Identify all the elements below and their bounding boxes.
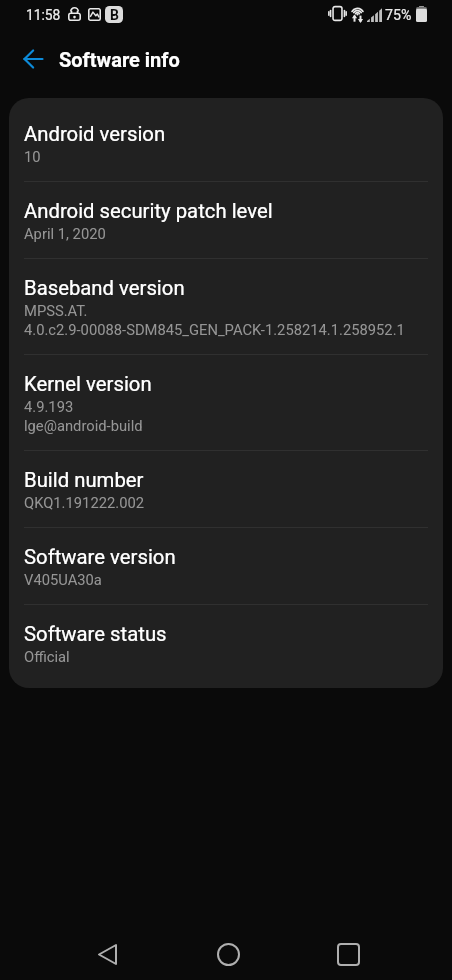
staticText: Baseband version	[24, 276, 185, 300]
button[interactable]: Software status	[9, 605, 443, 688]
staticText: Android security patch level	[24, 199, 273, 223]
staticText: V405UA30a	[24, 571, 102, 588]
staticText: MPSS.AT.	[24, 302, 88, 319]
staticText: April 1, 2020	[24, 225, 106, 242]
staticText: Android version	[24, 122, 166, 146]
staticText: B	[110, 7, 119, 23]
staticText: 11:58	[26, 7, 61, 23]
staticText: QKQ1.191222.002	[24, 494, 145, 511]
button[interactable]: Back	[83, 930, 131, 978]
staticText: Software version	[24, 545, 176, 569]
staticText: Kernel version	[24, 372, 152, 396]
staticText: Software status	[24, 622, 167, 646]
button[interactable]: Back	[12, 38, 54, 80]
staticText: Official	[24, 648, 70, 665]
button[interactable]: Kernel version	[9, 355, 443, 450]
staticText: 10	[24, 148, 41, 165]
button[interactable]: Android security patch level	[9, 182, 443, 258]
button[interactable]: Home	[204, 930, 252, 978]
staticText: 4.9.193	[24, 398, 74, 415]
staticText: 4.0.c2.9-00088-SDM845_GEN_PACK-1.258214.…	[24, 321, 405, 338]
button[interactable]: Build number	[9, 451, 443, 527]
staticText: 75%	[385, 7, 412, 24]
button[interactable]: Recents	[324, 930, 372, 978]
staticText: Software info	[59, 48, 180, 71]
staticText: lge@android-build	[24, 417, 143, 434]
button[interactable]: Baseband version	[9, 259, 443, 354]
staticText: Build number	[24, 468, 144, 492]
button[interactable]: Software version	[9, 528, 443, 604]
button[interactable]: Android version	[9, 98, 443, 181]
